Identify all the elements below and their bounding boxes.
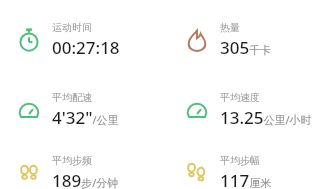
staticText: 305千卡 (220, 36, 272, 59)
button[interactable]: 热量 (168, 14, 336, 66)
staticText: 平均步幅 (220, 154, 260, 167)
other: 平均配速 (16, 97, 42, 123)
staticText: 117厘米 (220, 169, 272, 189)
button[interactable]: 平均速度 (168, 84, 336, 136)
other: 平均步幅 (184, 159, 210, 185)
button[interactable]: 平均步频 (0, 154, 168, 189)
staticText: 热量 (220, 21, 240, 34)
staticText: 00:27:18 (52, 36, 120, 59)
other: 运动时间 (16, 27, 42, 53)
button[interactable]: 平均配速 (0, 84, 168, 136)
other: 热量 (184, 27, 210, 53)
staticText: 运动时间 (52, 21, 92, 34)
staticText: 平均速度 (220, 91, 260, 104)
staticText: 平均配速 (52, 91, 92, 104)
staticText: 189步/分钟 (52, 169, 119, 189)
staticText: 平均步频 (52, 154, 92, 167)
button[interactable]: 平均步幅 (168, 154, 336, 189)
staticText: 13.25公里/小时 (220, 106, 312, 129)
staticText: 4'32"/公里 (52, 106, 119, 129)
other: 平均速度 (184, 97, 210, 123)
other: 平均步频 (16, 159, 42, 185)
button[interactable]: 运动时间 (0, 14, 168, 66)
